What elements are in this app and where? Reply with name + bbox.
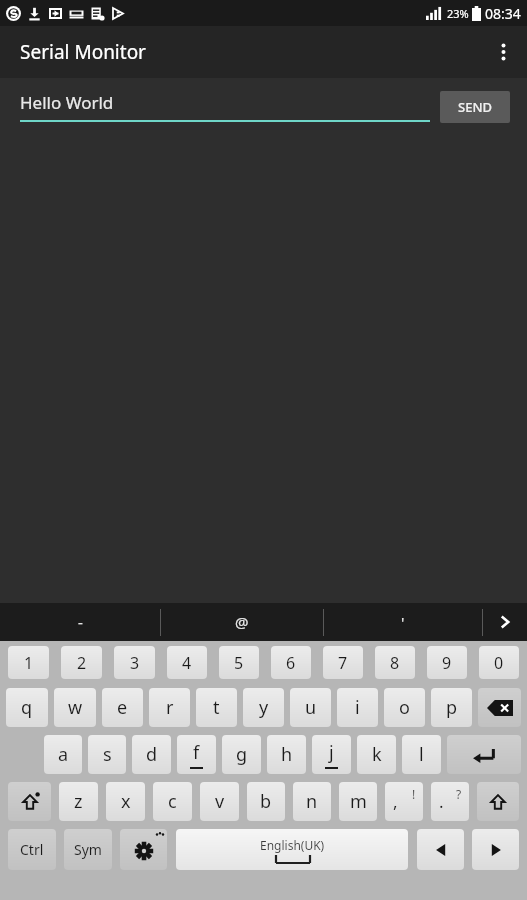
button[interactable]: , <box>385 782 423 821</box>
button[interactable]: 1 <box>8 646 49 679</box>
staticText: Hello World <box>20 91 114 114</box>
button[interactable]: @ <box>161 603 323 641</box>
button[interactable]: g <box>222 735 261 774</box>
button[interactable]: 6 <box>271 646 311 679</box>
button[interactable]: ' <box>324 603 482 641</box>
staticText: w <box>68 695 83 720</box>
staticText: f <box>193 740 200 765</box>
staticText: u <box>305 695 317 720</box>
staticText: 5 <box>234 652 244 674</box>
button[interactable]: l <box>402 735 441 774</box>
staticText: z <box>74 789 83 814</box>
staticText: d <box>146 742 158 767</box>
staticText: a <box>58 742 69 767</box>
staticText: e <box>117 695 128 720</box>
staticText: 8 <box>390 652 400 674</box>
button[interactable]: i <box>337 688 378 727</box>
button[interactable]: p <box>431 688 472 727</box>
button[interactable]: Enter <box>447 735 521 774</box>
button[interactable]: y <box>243 688 284 727</box>
button[interactable]: o <box>384 688 425 727</box>
button[interactable]: m <box>339 782 377 821</box>
button[interactable]: Sym <box>64 829 112 870</box>
staticText: s <box>103 742 112 767</box>
button[interactable]: 0 <box>479 646 519 679</box>
staticText: y <box>259 695 269 720</box>
button[interactable]: z <box>59 782 98 821</box>
staticText: 2 <box>77 652 87 674</box>
button[interactable]: d <box>132 735 171 774</box>
button[interactable]: Keyboard settings <box>120 829 167 870</box>
button[interactable]: Hello World <box>20 91 430 122</box>
button[interactable]: - <box>0 603 160 641</box>
staticText: , <box>393 790 398 813</box>
button[interactable]: 8 <box>375 646 415 679</box>
staticText: r <box>166 695 174 720</box>
button[interactable]: w <box>54 688 96 727</box>
button[interactable]: 4 <box>167 646 207 679</box>
staticText: m <box>350 789 367 814</box>
button[interactable]: t <box>196 688 237 727</box>
button[interactable]: 5 <box>219 646 259 679</box>
staticText: q <box>21 695 33 720</box>
staticText: p <box>446 695 458 720</box>
staticText: 3 <box>130 652 140 674</box>
staticText: 08:34 <box>485 4 521 23</box>
staticText: l <box>419 742 424 767</box>
staticText: ? <box>456 786 462 802</box>
button[interactable]: Left <box>417 829 464 870</box>
staticText: English(UK) <box>260 837 325 853</box>
button[interactable]: More options <box>479 26 527 78</box>
staticText: - <box>78 612 83 632</box>
staticText: 4 <box>182 652 192 674</box>
button[interactable]: s <box>88 735 126 774</box>
button[interactable]: f <box>177 735 216 774</box>
button[interactable]: q <box>6 688 48 727</box>
button[interactable]: 9 <box>427 646 467 679</box>
button[interactable]: Backspace <box>478 688 521 727</box>
staticText: v <box>215 789 225 814</box>
staticText: @ <box>235 612 249 632</box>
button[interactable]: e <box>102 688 143 727</box>
staticText: b <box>260 789 272 814</box>
staticText: Serial Monitor <box>20 39 146 65</box>
staticText: 7 <box>338 652 348 674</box>
staticText: ! <box>412 786 416 802</box>
button[interactable]: Caps lock <box>8 782 51 821</box>
staticText: Ctrl <box>20 840 44 859</box>
button[interactable]: Shift <box>477 782 519 821</box>
staticText: Sym <box>74 840 102 859</box>
staticText: SEND <box>458 98 492 116</box>
button[interactable]: 3 <box>114 646 155 679</box>
button[interactable]: a <box>44 735 82 774</box>
staticText: g <box>236 742 248 767</box>
button[interactable]: . <box>431 782 469 821</box>
button[interactable]: 2 <box>61 646 102 679</box>
button[interactable]: v <box>200 782 239 821</box>
staticText: 1 <box>24 652 34 674</box>
button[interactable]: n <box>293 782 331 821</box>
button[interactable]: x <box>106 782 145 821</box>
staticText: 6 <box>286 652 296 674</box>
button[interactable]: Right <box>472 829 519 870</box>
button[interactable]: SEND <box>440 91 510 123</box>
staticText: k <box>372 742 382 767</box>
button[interactable]: 7 <box>323 646 363 679</box>
button[interactable]: u <box>290 688 331 727</box>
button[interactable]: k <box>357 735 396 774</box>
staticText: i <box>355 695 360 720</box>
button[interactable]: c <box>153 782 192 821</box>
button[interactable]: r <box>149 688 190 727</box>
button[interactable]: Space <box>176 829 408 870</box>
staticText: x <box>121 789 131 814</box>
button[interactable]: Ctrl <box>8 829 56 870</box>
button[interactable]: b <box>247 782 285 821</box>
staticText: n <box>306 789 318 814</box>
button[interactable]: j <box>312 735 351 774</box>
staticText: 23% <box>447 6 469 21</box>
staticText: h <box>281 742 293 767</box>
button[interactable]: h <box>267 735 306 774</box>
staticText: j <box>329 740 334 765</box>
staticText: . <box>439 790 444 813</box>
button[interactable]: Next <box>483 603 527 641</box>
